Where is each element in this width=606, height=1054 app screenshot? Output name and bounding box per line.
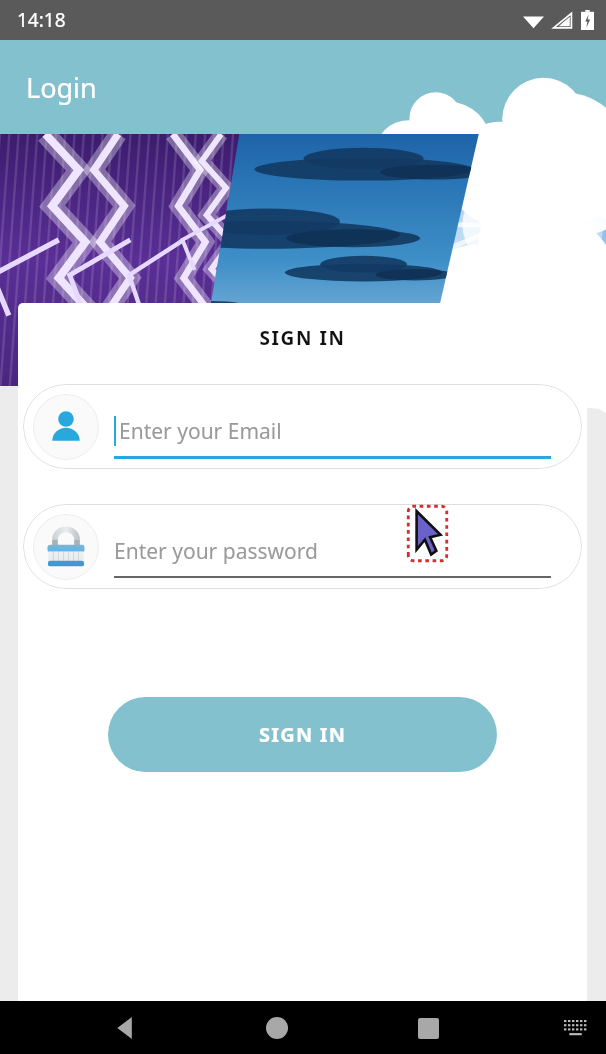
button[interactable]: Recent apps [405,1005,451,1051]
staticText: 14:18 [17,7,66,33]
button[interactable]: Back [104,1005,150,1051]
button[interactable]: Home [254,1005,300,1051]
button[interactable]: Enter your password [23,504,582,589]
staticText: Login [26,69,97,106]
button[interactable]: SIGN IN [108,697,497,772]
staticText: SIGN IN [259,325,346,351]
button[interactable]: Keyboard [556,1008,596,1048]
staticText: SIGN IN [259,721,347,748]
staticText: Enter your password [114,537,318,566]
button[interactable]: Enter your Email [23,384,582,469]
staticText: Enter your Email [119,417,282,446]
